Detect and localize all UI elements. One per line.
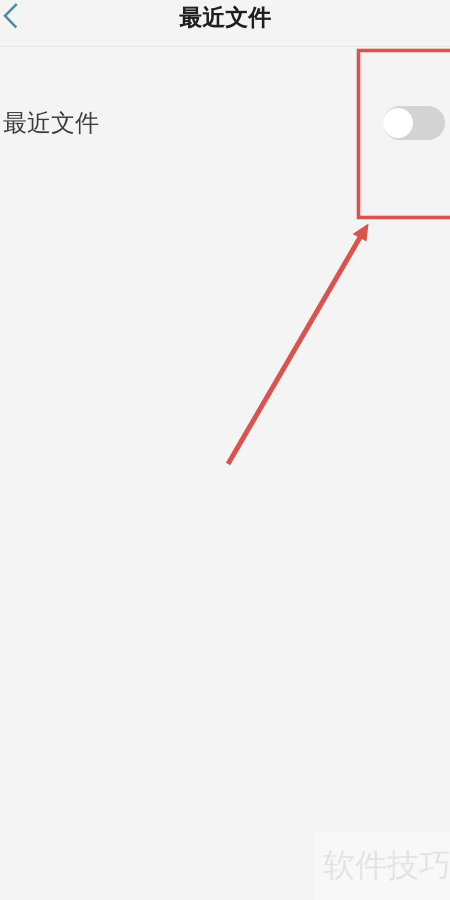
staticText: 最近文件 (3, 108, 99, 138)
button[interactable]: Back (0, 0, 44, 44)
staticText: 最近文件 (179, 4, 271, 32)
button[interactable]: 最近文件 (0, 47, 450, 199)
staticText: 软件技巧 (323, 846, 450, 885)
